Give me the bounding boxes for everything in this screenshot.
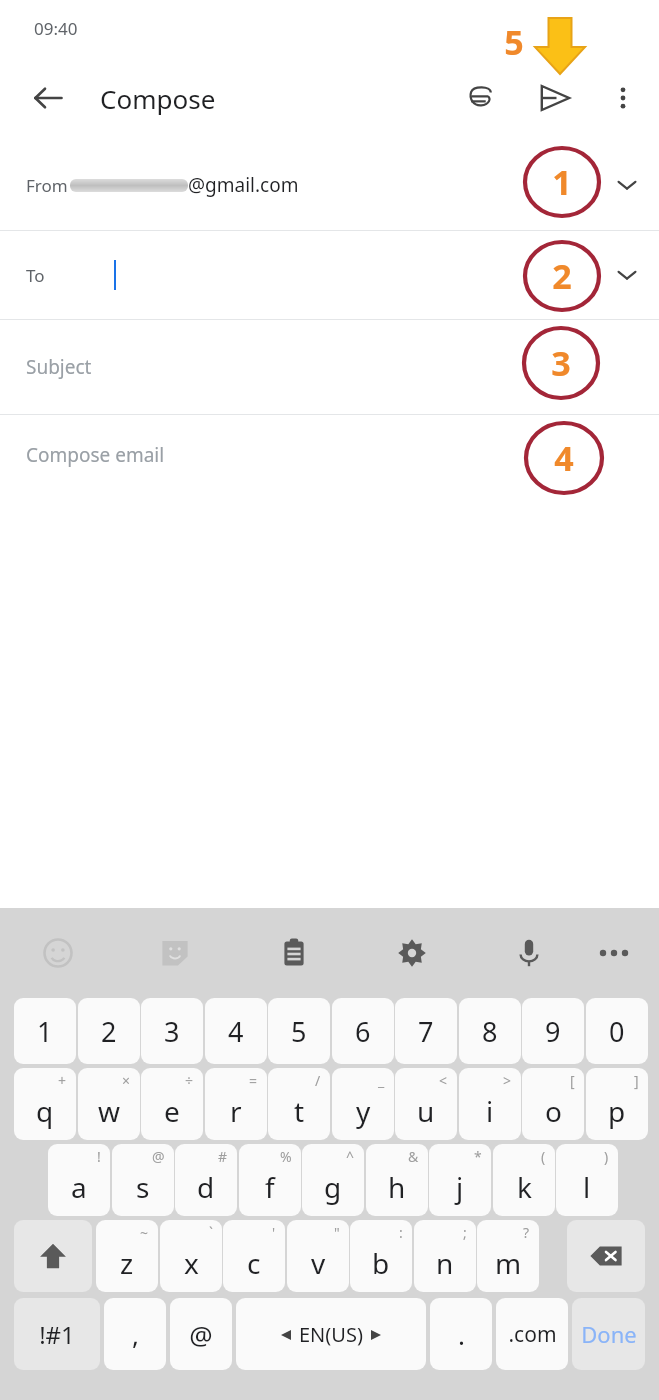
button[interactable]: Attach file — [451, 70, 507, 126]
staticText: * — [474, 1147, 482, 1166]
button[interactable]: Subject — [0, 320, 659, 414]
button[interactable]: , — [104, 1298, 166, 1370]
button[interactable]: = — [205, 1068, 267, 1140]
button[interactable]: Settings — [387, 928, 437, 978]
staticText: From — [26, 174, 68, 197]
staticText: 2 — [101, 1013, 117, 1050]
button[interactable]: Expand — [612, 260, 642, 290]
button[interactable]: ÷ — [141, 1068, 203, 1140]
button[interactable]: ? — [477, 1220, 539, 1292]
button[interactable]: Shift — [14, 1220, 92, 1292]
button[interactable]: 4 — [205, 998, 267, 1064]
staticText: 1 — [37, 1013, 53, 1050]
button[interactable]: Done — [572, 1298, 645, 1370]
staticText: !#1 — [39, 1318, 75, 1351]
button[interactable]: Compose email — [0, 415, 659, 495]
staticText: t — [294, 1092, 305, 1130]
staticText: 6 — [355, 1013, 371, 1050]
button[interactable]: Backspace — [567, 1220, 645, 1292]
button[interactable]: ' — [223, 1220, 285, 1292]
button[interactable]: Voice input — [504, 928, 554, 978]
staticText: ^ — [346, 1147, 355, 1166]
button[interactable]: 6 — [332, 998, 394, 1064]
button[interactable]: < — [395, 1068, 457, 1140]
button[interactable]: ; — [414, 1220, 476, 1292]
button[interactable]: " — [287, 1220, 349, 1292]
button[interactable]: To — [0, 231, 659, 319]
button[interactable]: More — [589, 928, 639, 978]
staticText: ? — [523, 1223, 530, 1242]
button[interactable]: 7 — [395, 998, 457, 1064]
staticText: # — [218, 1147, 228, 1166]
button[interactable]: 0 — [586, 998, 648, 1064]
staticText: s — [136, 1168, 150, 1206]
button[interactable]: ) — [556, 1144, 618, 1216]
button[interactable]: Emoji — [33, 928, 83, 978]
staticText: 3 — [551, 340, 571, 386]
staticText: k — [517, 1168, 532, 1206]
button[interactable]: _ — [332, 1068, 394, 1140]
staticText: × — [122, 1071, 131, 1090]
button[interactable]: ( — [493, 1144, 555, 1216]
staticText: ' — [272, 1223, 276, 1242]
button[interactable]: .com — [496, 1298, 568, 1370]
button[interactable]: * — [429, 1144, 491, 1216]
button[interactable]: > — [459, 1068, 521, 1140]
staticText: ( — [541, 1147, 546, 1166]
staticText: x — [184, 1244, 199, 1282]
button[interactable]: Stickers — [150, 928, 200, 978]
button[interactable]: Back — [18, 68, 78, 128]
staticText: g — [324, 1168, 342, 1206]
button[interactable]: EN(US) — [236, 1298, 426, 1370]
button[interactable]: [ — [522, 1068, 584, 1140]
staticText: ~ — [140, 1223, 149, 1242]
staticText: @ — [152, 1147, 165, 1166]
button[interactable]: ~ — [96, 1220, 158, 1292]
staticText: r — [230, 1092, 242, 1130]
staticText: 4 — [228, 1013, 244, 1050]
button[interactable]: Send — [527, 70, 583, 126]
button[interactable]: @ — [170, 1298, 232, 1370]
button[interactable]: # — [175, 1144, 237, 1216]
staticText: 8 — [482, 1013, 498, 1050]
button[interactable]: More options — [597, 72, 649, 124]
button[interactable]: / — [268, 1068, 330, 1140]
button[interactable]: 2 — [78, 998, 140, 1064]
button[interactable]: : — [350, 1220, 412, 1292]
button[interactable]: 5 — [268, 998, 330, 1064]
button[interactable]: 3 — [141, 998, 203, 1064]
button[interactable]: & — [366, 1144, 428, 1216]
button[interactable]: Clipboard — [269, 928, 319, 978]
button[interactable]: 1 — [14, 998, 76, 1064]
staticText: Subject — [26, 354, 92, 380]
button[interactable]: 9 — [522, 998, 584, 1064]
staticText: = — [249, 1071, 258, 1090]
button[interactable]: × — [78, 1068, 140, 1140]
staticText: [ — [570, 1071, 575, 1090]
button[interactable]: Expand — [612, 170, 642, 200]
staticText: e — [164, 1092, 180, 1130]
staticText: 3 — [164, 1013, 180, 1050]
button[interactable]: ! — [48, 1144, 110, 1216]
staticText: ` — [209, 1223, 213, 1242]
button[interactable]: !#1 — [14, 1298, 100, 1370]
staticText: + — [58, 1071, 67, 1090]
staticText: & — [408, 1147, 419, 1166]
staticText: @gmail.com — [188, 172, 299, 198]
button[interactable]: + — [14, 1068, 76, 1140]
button[interactable]: % — [239, 1144, 301, 1216]
staticText: % — [280, 1147, 292, 1166]
button[interactable]: @ — [112, 1144, 174, 1216]
staticText: ; — [463, 1223, 467, 1242]
staticText: 7 — [418, 1013, 434, 1050]
button[interactable]: ] — [586, 1068, 648, 1140]
button[interactable]: ^ — [302, 1144, 364, 1216]
staticText: , — [132, 1317, 139, 1352]
staticText: i — [486, 1092, 494, 1130]
button[interactable]: From — [0, 140, 659, 230]
staticText: v — [311, 1244, 326, 1282]
staticText: 0 — [609, 1013, 625, 1050]
button[interactable]: . — [430, 1298, 492, 1370]
button[interactable]: ` — [160, 1220, 222, 1292]
button[interactable]: 8 — [459, 998, 521, 1064]
